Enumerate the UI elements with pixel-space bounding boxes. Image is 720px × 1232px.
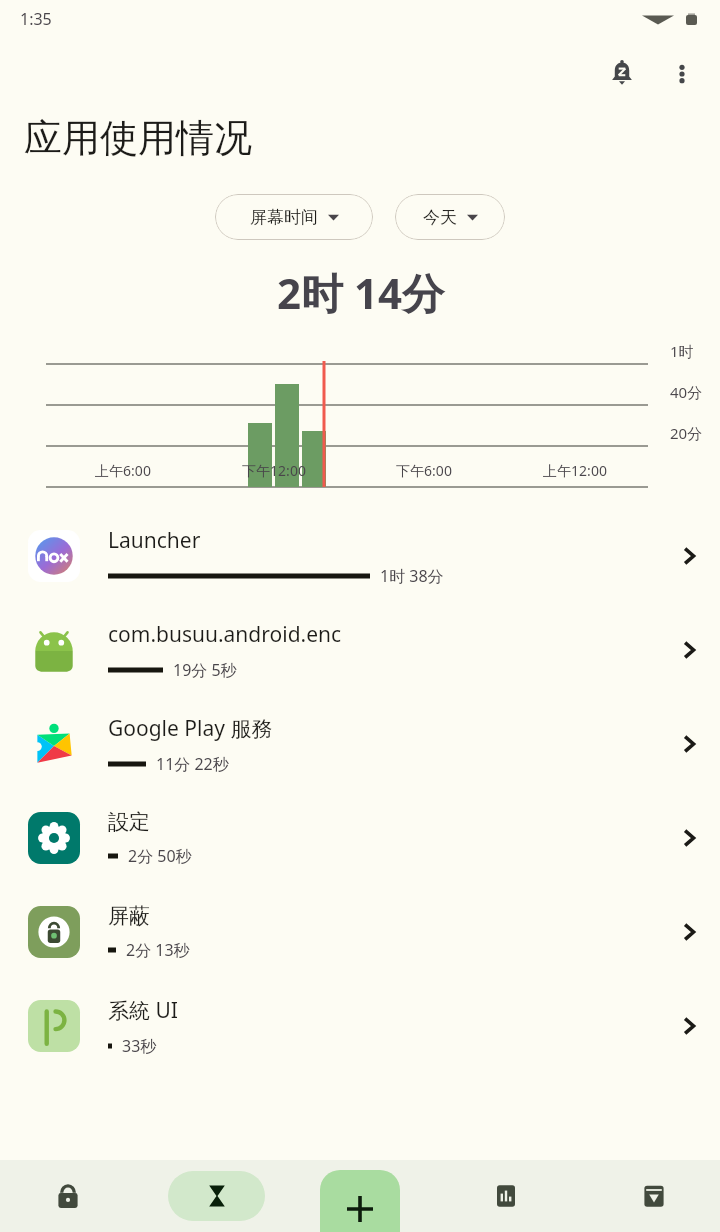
staticText: 今天 [423, 207, 457, 228]
staticText: 設定 [108, 809, 150, 835]
button[interactable]: Archive [630, 1172, 678, 1220]
button[interactable]: Add [320, 1170, 400, 1232]
staticText: 系統 UI [108, 996, 178, 1025]
staticText: 11分 22秒 [156, 753, 229, 775]
button[interactable]: Do not disturb [598, 50, 646, 98]
staticText: 上午12:00 [531, 461, 619, 480]
button[interactable]: Lock [44, 1172, 92, 1220]
staticText: 1:35 [20, 8, 52, 30]
button[interactable]: 設定 [0, 791, 720, 885]
staticText: com.busuu.android.enc [108, 620, 342, 649]
staticText: 2分 13秒 [126, 939, 190, 961]
button[interactable]: 屏幕时间 [215, 194, 373, 240]
staticText: 40分 [670, 382, 703, 402]
staticText: 屏幕时间 [250, 207, 318, 228]
button[interactable]: Google Play 服務 [0, 697, 720, 791]
button[interactable]: Screen time [168, 1171, 265, 1221]
staticText: Launcher [108, 526, 201, 555]
staticText: 33秒 [122, 1035, 157, 1057]
other: Open 系統 UI details [660, 979, 720, 1073]
other: Open com.busuu.android.enc details [660, 603, 720, 697]
staticText: 2分 50秒 [128, 845, 192, 867]
staticText: 20分 [670, 423, 703, 443]
button[interactable]: 系統 UI [0, 979, 720, 1073]
staticText: 应用使用情况 [24, 114, 252, 162]
staticText: 上午6:00 [79, 461, 167, 480]
button[interactable]: 今天 [395, 194, 505, 240]
button[interactable]: More options [658, 50, 706, 98]
button[interactable]: 屏蔽 [0, 885, 720, 979]
staticText: 19分 5秒 [173, 659, 237, 681]
button[interactable]: Statistics [482, 1172, 530, 1220]
other: Open 設定 details [660, 791, 720, 885]
staticText: 屏蔽 [108, 903, 150, 929]
other: Open Google Play 服務 details [660, 697, 720, 791]
staticText: 1时 [670, 341, 694, 361]
staticText: 2时 14分 [277, 264, 444, 321]
staticText: 下午6:00 [380, 461, 468, 480]
staticText: Google Play 服務 [108, 714, 273, 743]
other: Open Launcher details [660, 509, 720, 603]
button[interactable]: com.busuu.android.enc [0, 603, 720, 697]
button[interactable]: Launcher [0, 509, 720, 603]
staticText: 下午12:00 [230, 461, 318, 480]
staticText: 1时 38分 [380, 565, 444, 587]
other: Open 屏蔽 details [660, 885, 720, 979]
